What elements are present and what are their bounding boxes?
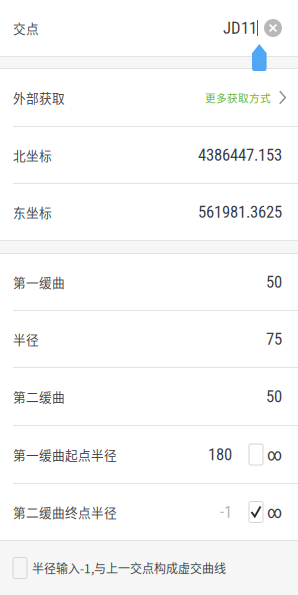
button[interactable]: 东坐标	[0, 184, 298, 240]
staticText: 第一缓曲起点半径	[13, 445, 117, 464]
button[interactable]: 外部获取	[0, 69, 298, 126]
staticText: 75	[266, 329, 282, 349]
button[interactable]: 交点	[0, 0, 298, 56]
staticText: 第一缓曲	[13, 273, 65, 291]
staticText: JD11	[223, 18, 257, 38]
staticText: ∞	[267, 502, 282, 522]
staticText: 北坐标	[13, 146, 52, 164]
button[interactable]: 北坐标	[0, 127, 298, 183]
staticText: 更多获取方式	[205, 90, 271, 105]
staticText: 180	[208, 445, 232, 464]
button[interactable]: 半径	[0, 311, 298, 367]
staticText: 50	[266, 272, 282, 292]
staticText: 交点	[13, 19, 39, 37]
staticText: 外部获取	[13, 88, 65, 107]
staticText: ∞	[267, 444, 282, 465]
button[interactable]: 第二缓曲	[0, 368, 298, 425]
staticText: 第二缓曲	[13, 387, 65, 406]
staticText: 561981.3625	[198, 202, 282, 222]
button[interactable]: 第二缓曲终点半径	[0, 484, 298, 540]
button[interactable]: 第一缓曲起点半径	[0, 426, 298, 483]
staticText: 东坐标	[13, 203, 52, 221]
staticText: 50	[266, 387, 282, 406]
button[interactable]: 半径输入-1,与上一交点构成虚交曲线	[0, 541, 298, 595]
staticText: 4386447.153	[198, 145, 282, 165]
staticText: 半径	[13, 330, 39, 348]
staticText: -1	[220, 502, 232, 522]
staticText: 第二缓曲终点半径	[13, 503, 117, 521]
staticText: 半径输入-1,与上一交点构成虚交曲线	[32, 559, 226, 577]
button[interactable]: 第一缓曲	[0, 254, 298, 310]
